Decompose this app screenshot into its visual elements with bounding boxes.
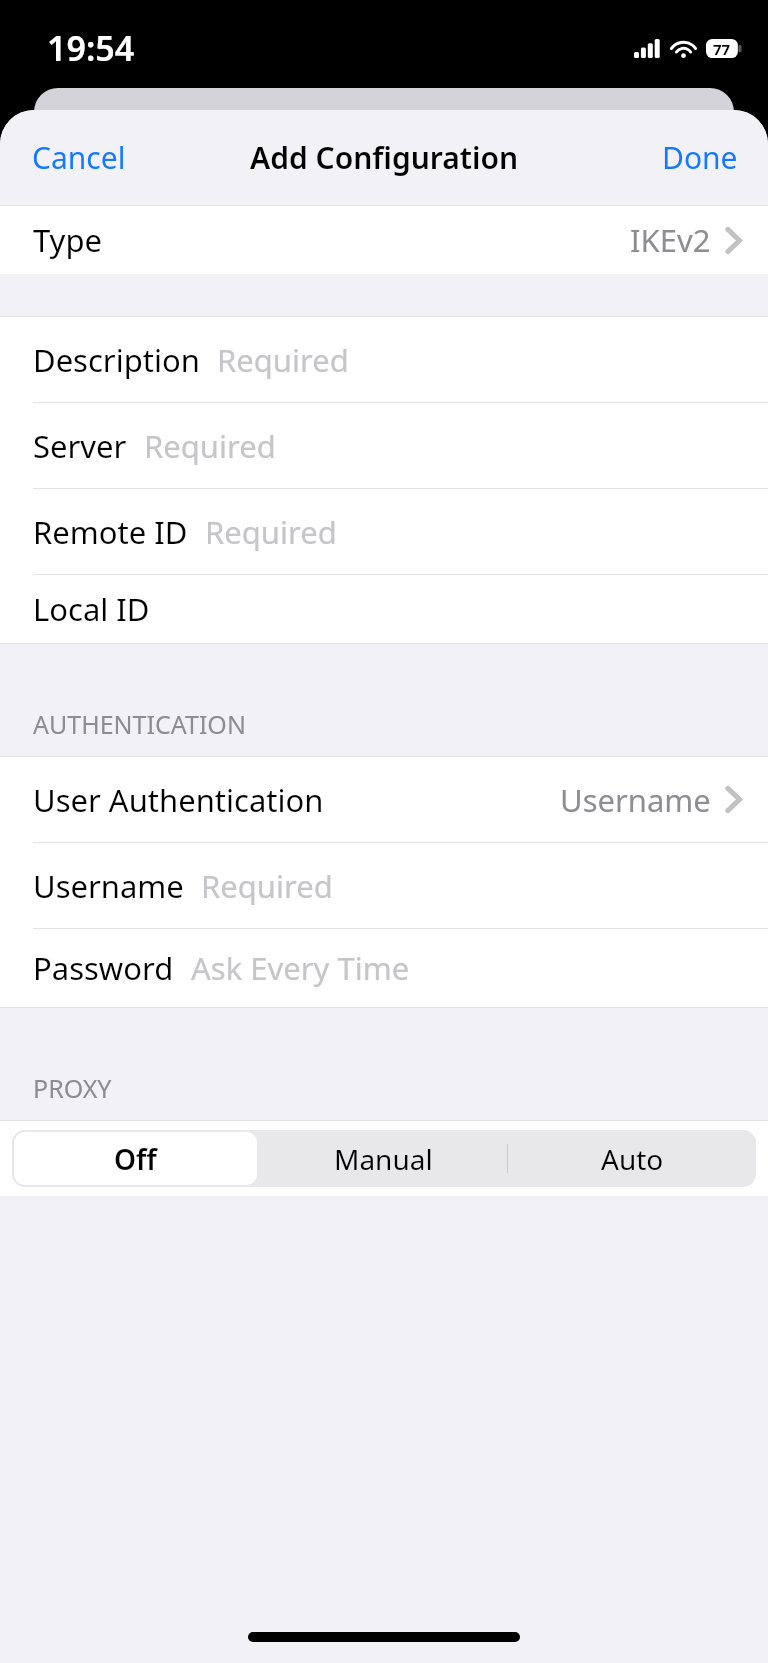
staticText: Ask Every Time [191, 947, 410, 989]
staticText: Username [560, 779, 711, 821]
staticText: Username [33, 865, 184, 907]
staticText: Required [205, 511, 337, 553]
other: Open Type options [726, 227, 741, 254]
staticText: AUTHENTICATION [33, 707, 246, 741]
button[interactable]: Server [0, 403, 768, 489]
staticText: Type [33, 219, 102, 261]
staticText: 19:54 [47, 25, 135, 71]
staticText: Off [114, 1140, 157, 1178]
button[interactable]: Type [0, 206, 768, 274]
staticText: IKEv2 [630, 219, 711, 261]
staticText: Server [33, 425, 127, 467]
other: Open User Authentication options [726, 786, 741, 813]
staticText: Password [33, 947, 174, 989]
button[interactable]: Password [0, 929, 768, 1007]
staticText: Cancel [32, 137, 126, 178]
button[interactable]: User Authentication [0, 757, 768, 843]
button[interactable]: Remote ID [0, 489, 768, 575]
staticText: Required [201, 865, 333, 907]
button[interactable]: Off [12, 1130, 259, 1187]
button[interactable]: Manual [259, 1130, 507, 1187]
button[interactable]: Cancel [0, 121, 150, 194]
staticText: Manual [334, 1140, 433, 1178]
button[interactable]: Username [0, 843, 768, 929]
button[interactable]: Auto [508, 1130, 756, 1187]
staticText: Add Configuration [250, 137, 519, 178]
staticText: Description [33, 339, 200, 381]
staticText: PROXY [33, 1071, 112, 1105]
staticText: Done [662, 137, 738, 178]
staticText: Auto [601, 1140, 664, 1178]
staticText: Required [144, 425, 276, 467]
staticText: Remote ID [33, 511, 188, 553]
staticText: 77 [713, 39, 731, 58]
button[interactable]: Done [638, 121, 768, 194]
staticText: Local ID [33, 588, 150, 630]
staticText: User Authentication [33, 779, 324, 821]
button[interactable]: Description [0, 317, 768, 403]
staticText: Required [217, 339, 349, 381]
button[interactable]: Local ID [0, 575, 768, 643]
